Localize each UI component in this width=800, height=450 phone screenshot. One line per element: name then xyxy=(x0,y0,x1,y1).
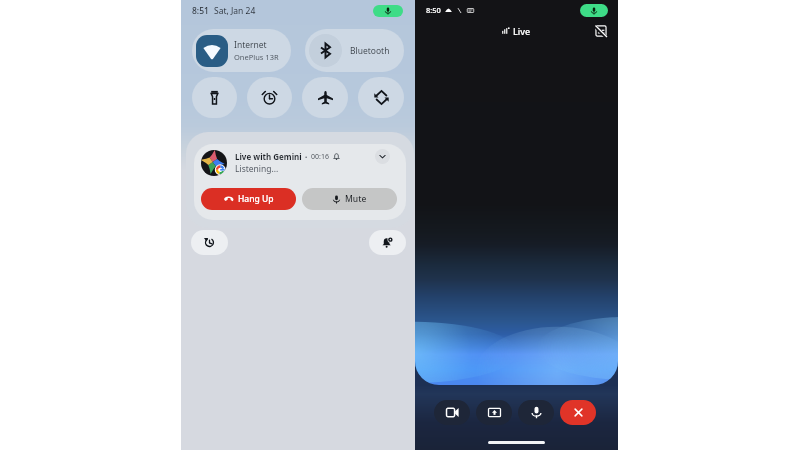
button[interactable]: Internet xyxy=(192,29,291,72)
button[interactable]: Mute xyxy=(302,188,397,210)
button[interactable]: Notification history xyxy=(191,230,228,255)
staticText: Listening... xyxy=(235,163,279,175)
button[interactable]: Alarm xyxy=(247,77,292,118)
staticText: Live with Gemini xyxy=(235,151,302,162)
button[interactable]: Auto-rotate xyxy=(358,77,404,118)
staticText: Live xyxy=(513,25,531,37)
button[interactable]: Expand notification xyxy=(375,149,390,164)
button[interactable]: Microphone in use xyxy=(580,4,608,17)
button[interactable]: Airplane mode xyxy=(302,77,348,118)
staticText: Bluetooth xyxy=(350,45,390,57)
button[interactable]: Flashlight xyxy=(192,77,237,118)
button[interactable]: Share screen xyxy=(476,400,512,425)
staticText: 8:50 xyxy=(426,5,441,15)
staticText: Sat, Jan 24 xyxy=(214,5,256,17)
staticText: Hang Up xyxy=(238,193,274,205)
staticText: Internet xyxy=(234,39,267,51)
button[interactable]: End session xyxy=(560,400,596,425)
staticText: Mute xyxy=(345,193,367,205)
button[interactable]: Camera xyxy=(434,400,470,425)
staticText: 8:51 xyxy=(192,5,209,17)
button[interactable]: Mute microphone xyxy=(518,400,554,425)
button[interactable]: Live with Gemini xyxy=(194,144,406,220)
staticText: 00:16 xyxy=(311,152,329,162)
button[interactable]: Microphone in use xyxy=(373,5,403,17)
button[interactable]: Hang Up xyxy=(201,188,296,210)
staticText: · xyxy=(305,151,308,162)
staticText: OnePlus 13R xyxy=(234,52,279,62)
button[interactable]: Turn off captions xyxy=(592,22,610,40)
button[interactable]: Bluetooth xyxy=(305,29,404,72)
button[interactable]: Notification settings xyxy=(369,230,406,255)
